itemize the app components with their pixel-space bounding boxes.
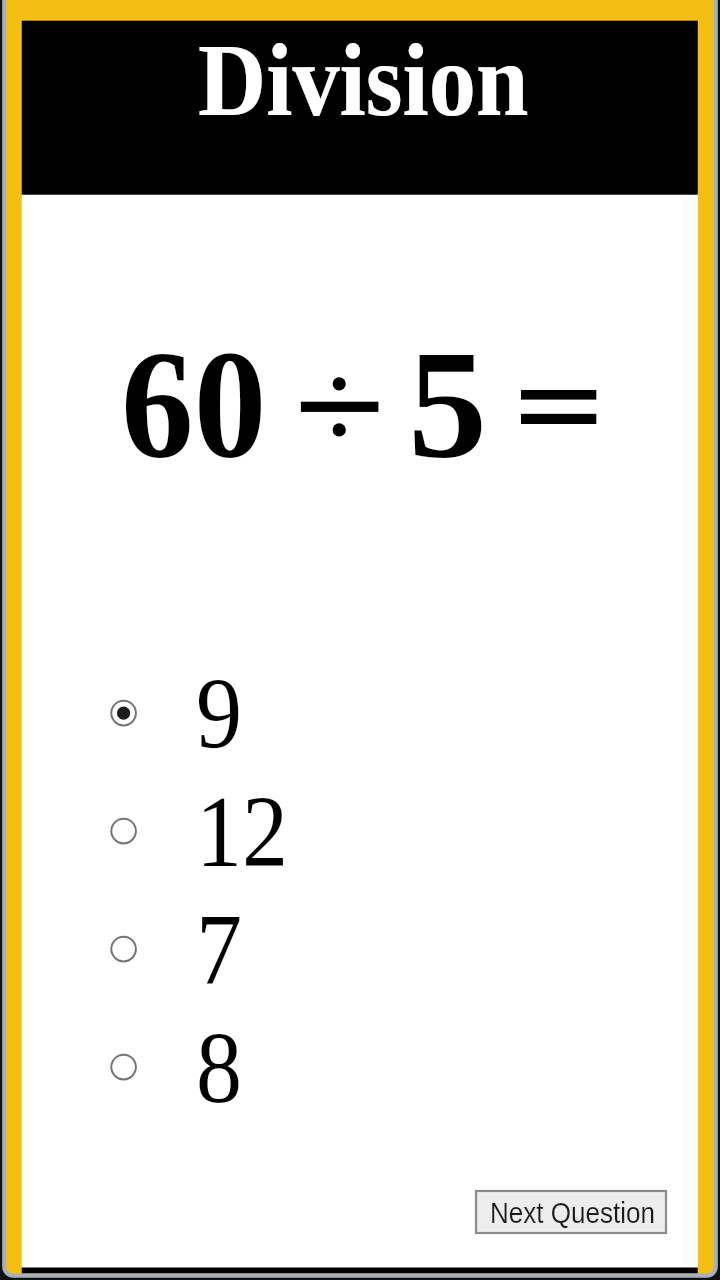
staticText: 12: [196, 775, 289, 883]
button[interactable]: Next Question: [476, 1191, 666, 1233]
staticText: 5: [408, 318, 488, 490]
staticText: 60: [121, 318, 267, 490]
button[interactable]: 7: [105, 887, 340, 995]
staticText: 8: [196, 1011, 243, 1119]
staticText: Division: [198, 23, 529, 138]
button[interactable]: 8: [105, 1005, 340, 1113]
button[interactable]: 12: [105, 769, 340, 877]
staticText: Next Question: [490, 1196, 655, 1229]
button[interactable]: 9: [105, 651, 340, 759]
staticText: 7: [196, 893, 243, 1001]
staticText: 9: [196, 657, 243, 765]
other: divided by, equals: [0, 0, 720, 1280]
